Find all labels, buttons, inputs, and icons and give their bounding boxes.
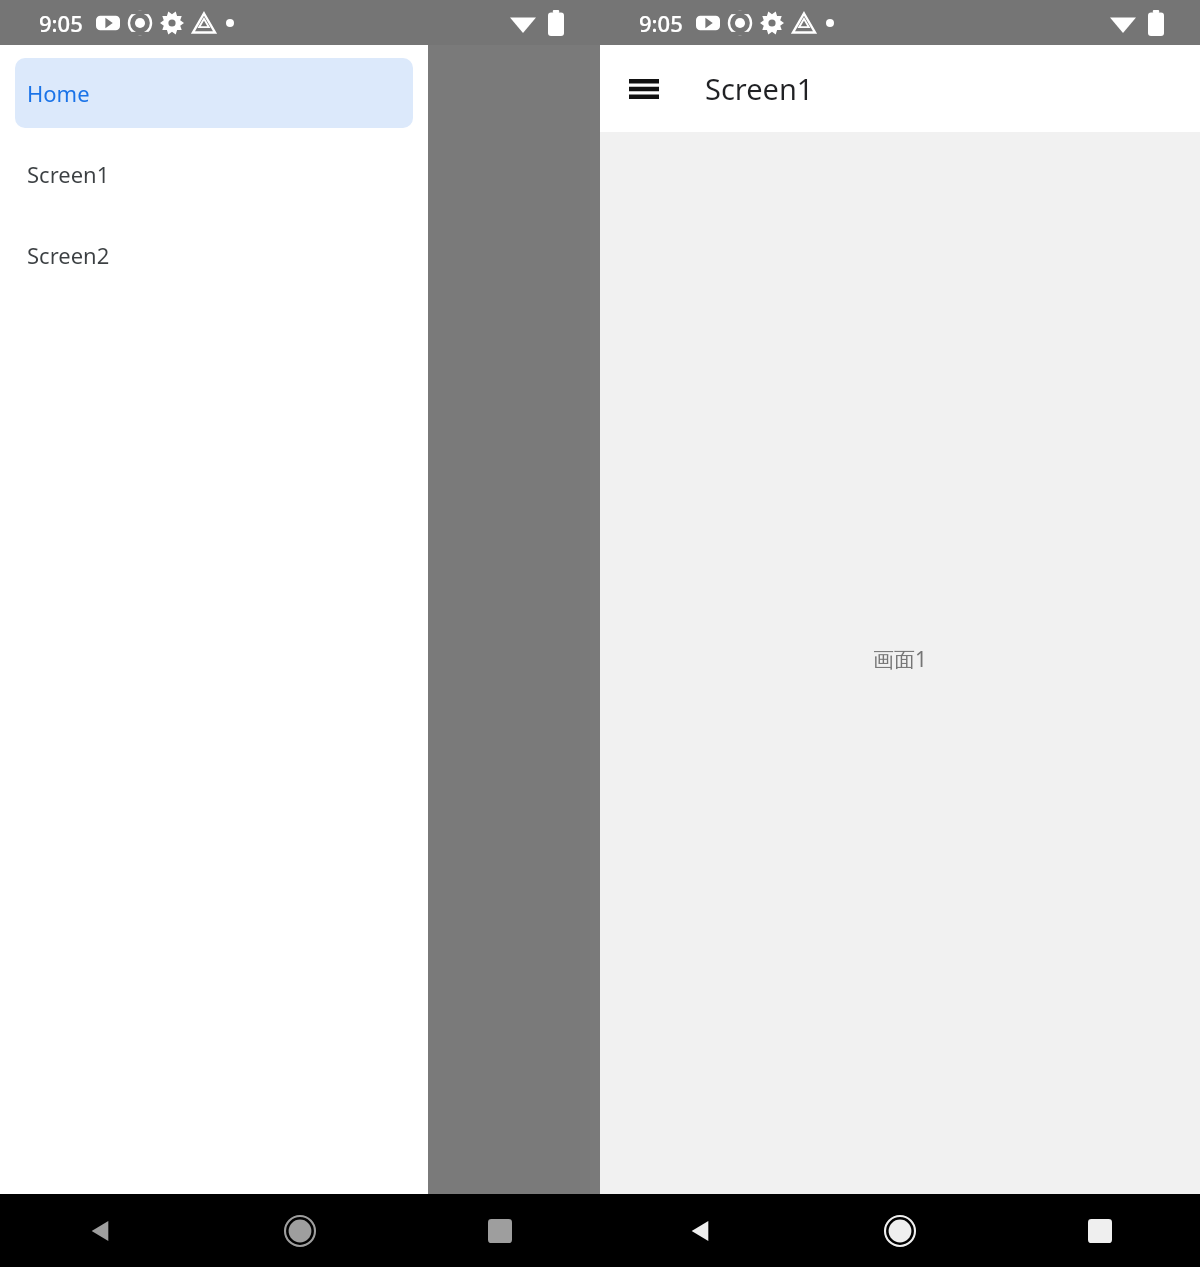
button[interactable]: Recent apps [400, 1194, 600, 1267]
button[interactable]: Home [200, 1194, 400, 1267]
button[interactable]: Back [0, 1194, 200, 1267]
staticText: Screen2 [27, 240, 110, 270]
staticText: 画面1 [873, 645, 928, 674]
staticText: 9:05 [639, 8, 683, 38]
button[interactable]: Back [600, 1194, 800, 1267]
staticText: Screen1 [705, 69, 814, 108]
button[interactable]: Screen1 [15, 139, 413, 209]
button[interactable]: Home [800, 1194, 1000, 1267]
button[interactable]: Screen2 [15, 220, 413, 290]
staticText: Home [27, 78, 90, 108]
button[interactable]: Open navigation menu [614, 59, 674, 119]
button[interactable]: Home [15, 58, 413, 128]
staticText: Screen1 [27, 159, 110, 189]
button[interactable]: Recent apps [1000, 1194, 1200, 1267]
staticText: 9:05 [39, 8, 83, 38]
